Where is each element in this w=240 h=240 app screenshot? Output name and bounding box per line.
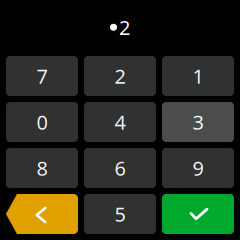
button[interactable]: 9 xyxy=(162,148,234,188)
button[interactable]: Confirm xyxy=(162,194,234,234)
staticText: 2 xyxy=(119,14,130,41)
staticText: 9 xyxy=(192,155,203,181)
button[interactable]: 8 xyxy=(6,148,78,188)
button[interactable]: 3 xyxy=(162,102,234,142)
button[interactable]: Delete xyxy=(6,194,78,234)
staticText: 4 xyxy=(114,109,125,135)
staticText: 0 xyxy=(36,109,47,135)
button[interactable]: 7 xyxy=(6,56,78,96)
button[interactable]: 4 xyxy=(84,102,156,142)
button[interactable]: 6 xyxy=(84,148,156,188)
button[interactable]: 1 xyxy=(162,56,234,96)
staticText: 1 xyxy=(192,63,203,89)
staticText: 5 xyxy=(114,201,125,227)
staticText: 2 xyxy=(114,63,125,89)
staticText: 3 xyxy=(192,109,203,135)
staticText: 7 xyxy=(36,63,47,89)
button[interactable]: 0 xyxy=(6,102,78,142)
button[interactable]: 5 xyxy=(84,194,156,234)
button[interactable]: 2 xyxy=(84,56,156,96)
staticText: 6 xyxy=(114,155,125,181)
staticText: 8 xyxy=(36,155,47,181)
